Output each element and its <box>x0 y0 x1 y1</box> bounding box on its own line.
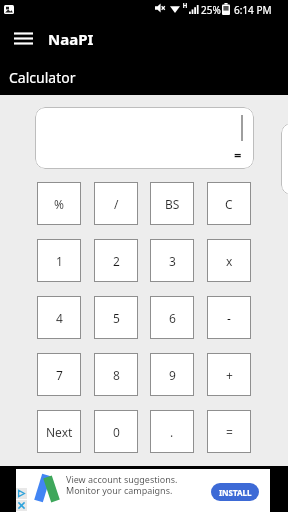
staticText: + <box>226 367 233 383</box>
button[interactable]: 4 <box>37 296 81 339</box>
button[interactable] <box>0 17 288 57</box>
staticText: 6 <box>169 310 176 326</box>
button[interactable]: 1 <box>37 239 81 282</box>
staticText: 7 <box>56 367 63 383</box>
staticText: / <box>114 196 119 212</box>
button[interactable]: / <box>94 182 138 225</box>
button[interactable]: C <box>207 182 251 225</box>
button[interactable]: - <box>207 296 251 339</box>
button[interactable]: 2 <box>94 239 138 282</box>
staticText: . <box>170 424 174 440</box>
button[interactable]: x <box>207 239 251 282</box>
staticText: Calculator <box>9 68 76 87</box>
staticText: NaaPI <box>48 29 94 49</box>
staticText: 2 <box>113 253 120 269</box>
staticText: Monitor your campaigns. <box>66 484 173 496</box>
button[interactable]: = <box>35 107 254 169</box>
staticText: C <box>225 196 233 212</box>
button[interactable]: 6 <box>150 296 194 339</box>
button[interactable]: 3 <box>150 239 194 282</box>
staticText: 3 <box>169 253 176 269</box>
staticText: 6:14 PM <box>234 3 272 17</box>
staticText: View account suggestions. <box>66 473 178 485</box>
button[interactable]: 5 <box>94 296 138 339</box>
button[interactable]: Next <box>37 410 81 453</box>
staticText: Next <box>46 424 73 440</box>
staticText: % <box>54 196 64 212</box>
staticText: BS <box>165 196 180 212</box>
button[interactable]: 0 <box>94 410 138 453</box>
button[interactable] <box>16 469 270 512</box>
staticText: INSTALL <box>219 487 252 498</box>
staticText: = <box>234 146 242 164</box>
staticText: = <box>226 424 233 440</box>
staticText: x <box>226 253 233 269</box>
staticText: 25% <box>201 3 221 17</box>
button[interactable]: 9 <box>150 353 194 396</box>
button[interactable]: + <box>207 353 251 396</box>
button[interactable]: INSTALL <box>211 483 259 501</box>
staticText: 4 <box>56 310 63 326</box>
staticText: 5 <box>113 310 120 326</box>
staticText: - <box>227 310 231 326</box>
staticText: 9 <box>169 367 176 383</box>
button[interactable]: . <box>150 410 194 453</box>
button[interactable]: = <box>207 410 251 453</box>
staticText: 1 <box>56 253 63 269</box>
button[interactable]: BS <box>150 182 194 225</box>
button[interactable]: 7 <box>37 353 81 396</box>
button[interactable]: % <box>37 182 81 225</box>
staticText: 0 <box>113 424 120 440</box>
staticText: 8 <box>113 367 120 383</box>
button[interactable]: 8 <box>94 353 138 396</box>
